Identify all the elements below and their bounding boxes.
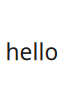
staticText: hello	[5, 36, 58, 66]
